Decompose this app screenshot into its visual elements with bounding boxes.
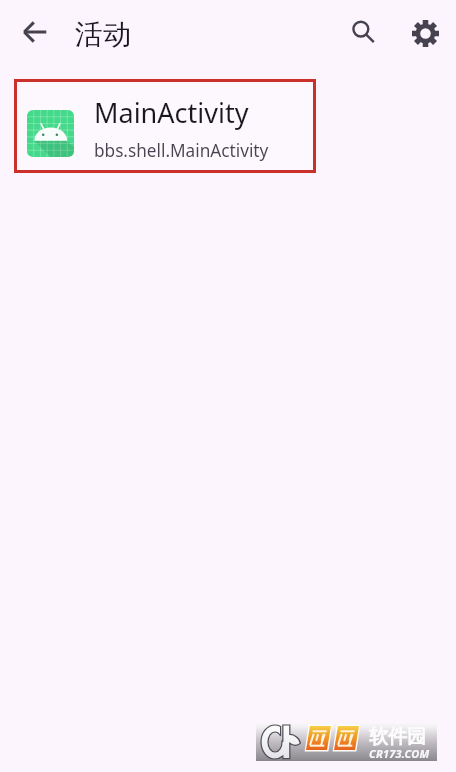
staticText: bbs.shell.MainActivity — [94, 139, 269, 162]
staticText: 活动 — [75, 17, 131, 52]
button[interactable]: MainActivity — [14, 79, 316, 173]
button[interactable]: Settings — [401, 9, 449, 57]
button[interactable]: Back — [11, 8, 59, 56]
staticText: CR173.COM — [369, 746, 430, 761]
staticText: 软件园 — [369, 725, 426, 749]
staticText: MainActivity — [94, 94, 249, 131]
button[interactable]: Search — [339, 8, 387, 56]
